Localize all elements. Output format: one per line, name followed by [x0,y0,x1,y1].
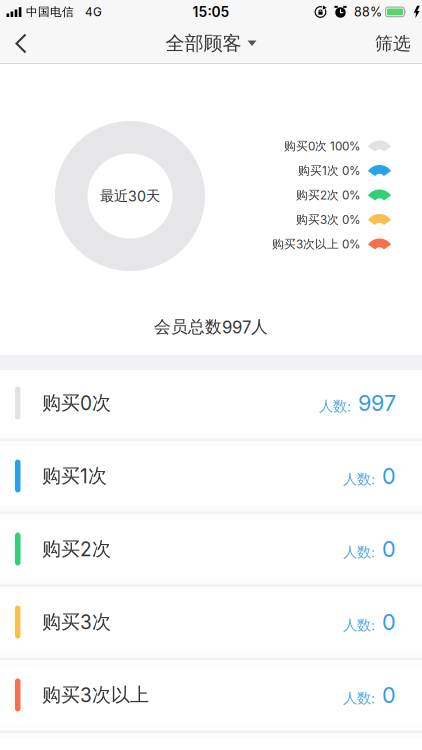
staticText: 购买0次 100% [284,139,361,153]
staticText: 人数: [343,689,375,707]
staticText: 会员总数997人 [154,316,268,337]
staticText: 人数: [319,397,351,415]
button[interactable]: 购买0次 [0,373,422,433]
staticText: 人数: [343,616,375,634]
staticText: 购买1次 [42,464,107,488]
staticText: 购买3次 [42,610,111,634]
staticText: 筛选 [375,32,411,55]
button[interactable]: 购买3次 [0,592,422,652]
staticText: 0 [382,609,396,635]
button[interactable]: 全部顾客 [165,31,256,56]
staticText: 购买3次 0% [296,212,361,227]
staticText: 0 [382,536,396,562]
staticText: 购买1次 0% [298,163,361,178]
staticText: 购买3次以上 [42,683,149,707]
staticText: 15:05 [192,4,229,20]
staticText: 997 [358,390,396,416]
staticText: 人数: [343,543,375,561]
staticText: 购买3次以上 0% [272,237,361,251]
staticText: 中国电信 [26,5,74,19]
staticText: 88% [354,4,382,19]
staticText: 全部顾客 [165,31,241,56]
staticText: 购买2次 [42,537,111,561]
button[interactable]: 筛选 [375,32,422,55]
staticText: 0 [382,463,396,489]
staticText: 0 [382,682,396,708]
button[interactable]: Back [0,33,27,53]
button[interactable]: 购买3次以上 [0,665,422,725]
button[interactable]: 购买2次 [0,519,422,579]
staticText: 人数: [343,470,375,488]
staticText: 购买0次 [42,391,111,415]
staticText: 4G [85,5,102,19]
button[interactable]: 购买1次 [0,446,422,506]
staticText: 最近30天 [100,187,160,205]
staticText: 购买2次 0% [296,188,361,202]
